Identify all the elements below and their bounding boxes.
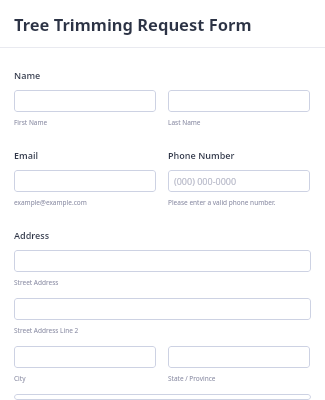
staticText: Street Address (14, 278, 59, 287)
staticText: (000) 000-0000 (174, 175, 237, 187)
button[interactable] (14, 298, 311, 320)
button[interactable] (14, 394, 311, 400)
staticText: example@example.com (14, 198, 87, 207)
staticText: Email (14, 149, 39, 161)
staticText: Street Address Line 2 (14, 326, 79, 335)
staticText: State / Province (168, 374, 216, 383)
staticText: Last Name (168, 118, 201, 127)
button[interactable] (14, 170, 156, 192)
button[interactable] (14, 90, 156, 112)
staticText: Phone Number (168, 149, 235, 161)
staticText: City (14, 374, 26, 383)
staticText: Address (14, 229, 50, 241)
button[interactable] (14, 346, 156, 368)
button[interactable] (168, 346, 310, 368)
button[interactable] (14, 250, 311, 272)
staticText: First Name (14, 118, 48, 127)
staticText: Please enter a valid phone number. (168, 198, 276, 207)
button[interactable]: (000) 000-0000 (168, 170, 310, 192)
staticText: Tree Trimming Request Form (14, 13, 252, 35)
staticText: Name (14, 69, 41, 81)
button[interactable] (168, 90, 310, 112)
